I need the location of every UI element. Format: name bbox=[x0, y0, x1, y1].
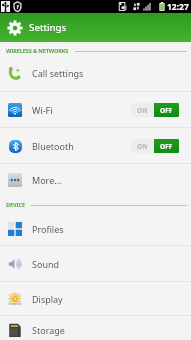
staticText: Display bbox=[32, 293, 63, 305]
button[interactable]: Display bbox=[0, 282, 191, 315]
staticText: Profiles bbox=[32, 223, 64, 235]
staticText: ON bbox=[137, 106, 148, 115]
staticText: WIRELESS & NETWORKS bbox=[6, 47, 69, 55]
staticText: Settings bbox=[29, 21, 67, 34]
staticText: OFF bbox=[160, 142, 173, 151]
staticText: Bluetooth bbox=[32, 140, 74, 152]
button[interactable]: ON bbox=[131, 139, 179, 153]
staticText: More... bbox=[32, 174, 62, 186]
staticText: Storage bbox=[32, 324, 65, 336]
button[interactable]: Wi-Fi bbox=[0, 92, 191, 127]
button[interactable]: Storage bbox=[0, 316, 191, 340]
staticText: Sound bbox=[32, 258, 60, 270]
button[interactable]: Sound bbox=[0, 246, 191, 281]
staticText: Call settings bbox=[32, 67, 84, 79]
button[interactable]: ON bbox=[131, 103, 179, 117]
button[interactable]: Profiles bbox=[0, 213, 191, 245]
staticText: 12:27 bbox=[167, 1, 189, 13]
staticText: ON bbox=[137, 142, 148, 151]
button[interactable]: More... bbox=[0, 164, 191, 196]
staticText: Wi-Fi bbox=[32, 104, 53, 116]
button[interactable]: Bluetooth bbox=[0, 128, 191, 163]
staticText: DEVICE bbox=[6, 201, 25, 209]
button[interactable]: Settings bbox=[0, 13, 191, 42]
staticText: OFF bbox=[160, 106, 173, 115]
button[interactable]: Call settings bbox=[0, 55, 191, 91]
